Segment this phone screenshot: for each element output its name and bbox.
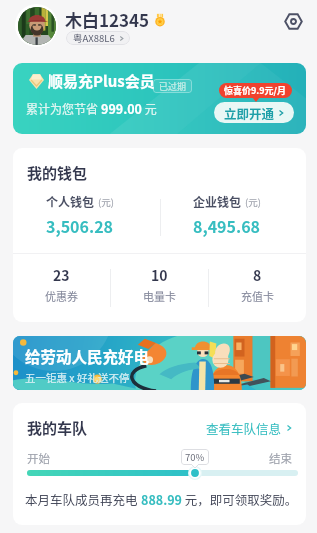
button[interactable]: Settings [281, 9, 305, 33]
staticText: 立即开通 [224, 104, 275, 122]
staticText: 元，即可领取奖励。 [182, 490, 298, 508]
staticText: 查看车队信息 [206, 419, 282, 437]
staticText: (元) [98, 195, 114, 209]
staticText: 企业钱包 [193, 193, 242, 210]
staticText: 开始 [27, 450, 50, 467]
staticText: 木白12345 [65, 7, 150, 32]
button[interactable]: 企业钱包 [193, 193, 261, 237]
staticText: 888.99 [141, 490, 182, 508]
staticText: 顺易充Plus会员 [48, 70, 155, 92]
staticText: 优惠券 [45, 288, 78, 304]
staticText: 我的车队 [27, 417, 88, 439]
button[interactable]: 个人钱包 [46, 193, 114, 237]
staticText: 累计为您节省 [26, 100, 101, 117]
button[interactable]: 粤AX88L6 [66, 31, 130, 45]
button[interactable]: 8 [209, 254, 306, 322]
button[interactable]: 23 [13, 254, 110, 322]
staticText: 8,495.68 [193, 214, 261, 237]
staticText: 8 [253, 265, 262, 285]
staticText: 70% [185, 450, 205, 464]
staticText: 给劳动人民充好电 [25, 345, 150, 367]
staticText: (元) [245, 195, 261, 209]
staticText: 元 [142, 100, 157, 117]
staticText: 本月车队成员再充电 [25, 490, 141, 508]
button[interactable]: Profile avatar [15, 4, 58, 47]
staticText: 粤AX88L6 [73, 31, 115, 45]
staticText: 结束 [269, 450, 292, 467]
staticText: 充值卡 [241, 288, 274, 304]
button[interactable]: 给劳动人民充好电 [13, 336, 306, 390]
button[interactable]: 顺易充Plus会员 [13, 63, 306, 134]
staticText: 我的钱包 [27, 162, 88, 184]
staticText: 已过期 [159, 80, 187, 93]
staticText: 3,506.28 [46, 214, 114, 237]
staticText: 惊喜价9.9元/月 [224, 84, 287, 97]
staticText: 五一钜惠 x 好礼送不停 [25, 370, 130, 385]
staticText: 电量卡 [143, 288, 176, 304]
staticText: 10 [151, 265, 168, 285]
staticText: 999.00 [101, 99, 142, 117]
button[interactable]: 查看车队信息 [206, 419, 292, 437]
button[interactable]: 10 [111, 254, 208, 322]
staticText: 个人钱包 [46, 193, 95, 210]
button[interactable]: 立即开通 [214, 102, 294, 123]
staticText: 23 [53, 265, 70, 285]
